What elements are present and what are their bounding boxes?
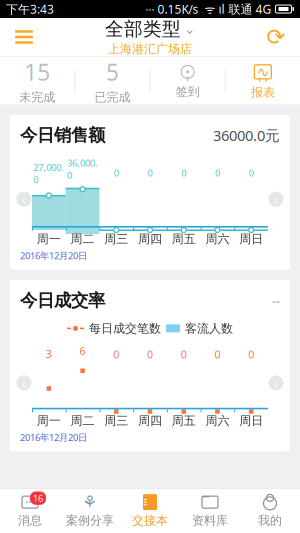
staticText: 0	[181, 347, 187, 361]
staticText: 27,000.0	[33, 161, 64, 186]
staticText: 0	[113, 347, 119, 361]
staticText: 0	[215, 167, 220, 179]
staticText: 报表	[251, 85, 275, 99]
staticText: 消息	[18, 513, 42, 528]
staticText: 联通 4G	[224, 1, 271, 17]
staticText: ‹	[21, 373, 26, 393]
staticText: 周一	[37, 413, 61, 428]
staticText: 案例分享	[66, 513, 114, 528]
staticText: 今日成交率	[20, 290, 105, 311]
button[interactable]: Refresh	[254, 20, 298, 54]
button[interactable]: 资料库	[180, 489, 240, 533]
staticText: --	[272, 291, 280, 309]
button[interactable]: 16	[0, 489, 60, 533]
staticText: 16	[33, 492, 43, 504]
button[interactable]: Next	[266, 189, 286, 209]
staticText: 周五	[172, 232, 196, 246]
button[interactable]: ⚘	[60, 489, 120, 533]
staticText: 周二	[71, 413, 95, 428]
staticText: 0	[214, 347, 220, 361]
button[interactable]: ∿	[226, 59, 300, 103]
staticText: 周日	[239, 232, 263, 246]
staticText: 周六	[205, 413, 229, 428]
staticText: 0	[181, 167, 186, 179]
staticText: ⌄	[184, 22, 195, 37]
staticText: ‹	[21, 189, 26, 209]
staticText: 周三	[104, 413, 128, 428]
staticText: 周四	[138, 413, 162, 428]
staticText: 0.15K/s	[154, 1, 198, 17]
staticText: 周四	[138, 232, 162, 246]
staticText: 周二	[71, 232, 95, 246]
staticText: 0	[147, 347, 153, 361]
staticText: ›	[273, 189, 278, 209]
staticText: ›	[273, 373, 278, 393]
staticText: 36,000.0	[67, 157, 98, 181]
staticText: ⚘	[82, 492, 98, 512]
staticText: 周六	[205, 232, 229, 246]
staticText: 今日销售额	[20, 125, 105, 146]
staticText: 周一	[37, 232, 61, 246]
button[interactable]: Menu	[2, 20, 46, 54]
button[interactable]: 15	[0, 59, 74, 103]
button[interactable]: 签到	[150, 59, 225, 103]
staticText: ···	[145, 2, 154, 16]
button[interactable]: 交接本	[120, 489, 180, 533]
staticText: 3	[46, 347, 52, 361]
staticText: 2016年12月20日	[20, 249, 87, 262]
staticText: ıl	[215, 1, 224, 17]
staticText: 5	[106, 57, 119, 87]
staticText: 全部类型	[105, 18, 181, 41]
staticText: ᯤ	[198, 1, 215, 17]
staticText: 每日成交笔数	[89, 321, 161, 336]
staticText: 签到	[176, 84, 200, 99]
staticText: 周五	[172, 413, 196, 428]
staticText: 36000.0元	[213, 126, 280, 145]
staticText: 客流人数	[185, 321, 233, 336]
staticText: 0	[249, 167, 254, 179]
staticText: 未完成	[19, 90, 55, 105]
staticText: 6	[80, 344, 86, 358]
staticText: 0	[147, 167, 152, 179]
button[interactable]: Previous	[14, 189, 34, 209]
staticText: 15	[24, 57, 50, 87]
button[interactable]: Next	[266, 373, 286, 393]
staticText: 已完成	[94, 90, 130, 105]
staticText: 周三	[104, 232, 128, 246]
staticText: 周日	[239, 413, 263, 428]
staticText: 上海港汇广场店	[108, 42, 192, 56]
staticText: 2016年12月20日	[20, 431, 87, 443]
button[interactable]: 我的	[240, 489, 300, 533]
staticText: 资料库	[192, 513, 228, 528]
staticText: 我的	[258, 513, 282, 528]
button[interactable]: Previous	[14, 373, 34, 393]
staticText: ∿	[257, 63, 269, 80]
staticText: 交接本	[132, 513, 168, 528]
staticText: 0	[114, 167, 119, 179]
button[interactable]: 5	[75, 59, 149, 103]
staticText: 0	[248, 347, 254, 361]
staticText: 下午3:43	[6, 1, 54, 17]
staticText: ⟳	[266, 24, 285, 50]
